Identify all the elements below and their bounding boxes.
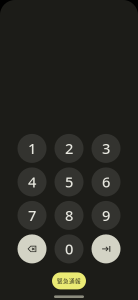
staticText: 緊急通報 [57, 277, 81, 285]
button[interactable]: 9 [91, 201, 120, 230]
staticText: 4 [28, 172, 36, 192]
staticText: 0 [65, 239, 73, 259]
staticText: 2 [65, 139, 73, 158]
staticText: 9 [102, 206, 110, 225]
button[interactable]: Delete [17, 234, 46, 263]
staticText: 1 [28, 139, 36, 158]
button[interactable]: 8 [54, 201, 83, 230]
button[interactable]: 0 [54, 234, 83, 263]
button[interactable]: 緊急通報 [52, 272, 86, 289]
button[interactable]: 4 [17, 167, 46, 196]
button[interactable]: 3 [91, 134, 120, 163]
staticText: 6 [102, 172, 110, 192]
button[interactable]: 2 [54, 134, 83, 163]
staticText: 3 [102, 139, 110, 158]
button[interactable]: 7 [17, 201, 46, 230]
button[interactable]: 1 [17, 134, 46, 163]
staticText: 5 [65, 172, 73, 192]
button[interactable]: Enter [91, 234, 120, 263]
button[interactable]: 6 [91, 167, 120, 196]
staticText: 8 [65, 206, 73, 225]
button[interactable]: 5 [54, 167, 83, 196]
staticText: 7 [28, 206, 36, 225]
